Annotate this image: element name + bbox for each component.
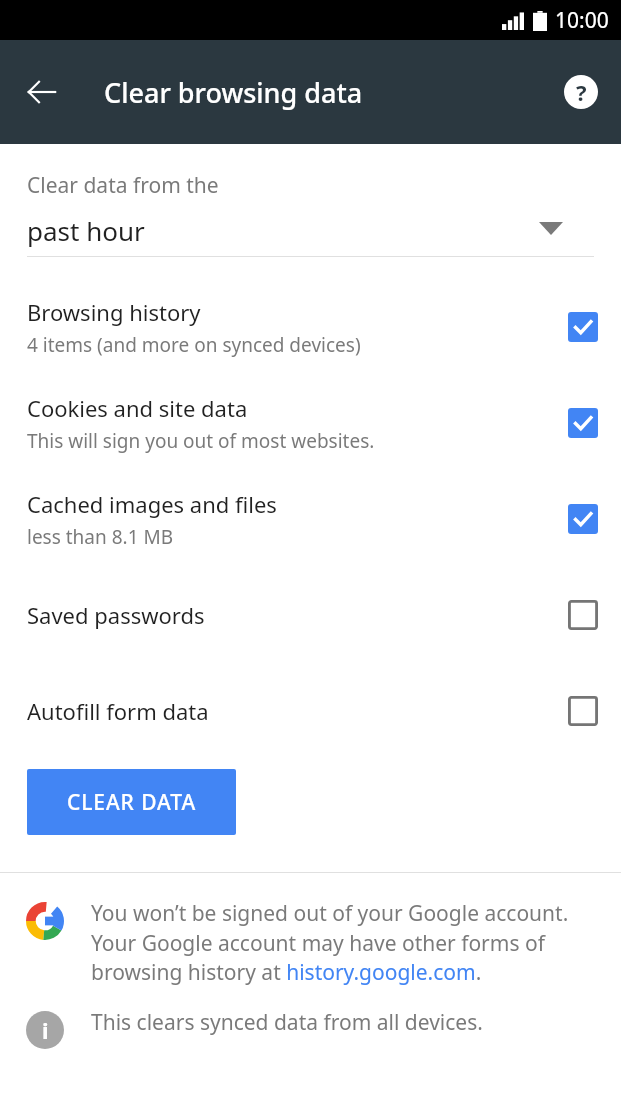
staticText: less than 8.1 MB bbox=[27, 524, 174, 550]
staticText: Clear data from the bbox=[27, 171, 219, 200]
button[interactable]: Checked bbox=[559, 495, 607, 543]
staticText: Autofill form data bbox=[27, 696, 209, 726]
button[interactable]: Checked bbox=[559, 303, 607, 351]
staticText: 10:00 bbox=[555, 6, 609, 35]
staticText: Cached images and files bbox=[27, 489, 277, 519]
staticText: Saved passwords bbox=[27, 600, 205, 630]
button[interactable]: CLEAR DATA bbox=[27, 769, 236, 835]
button[interactable]: Autofill form data bbox=[0, 663, 621, 759]
staticText: CLEAR DATA bbox=[67, 788, 197, 817]
button[interactable]: Help bbox=[555, 66, 607, 118]
staticText: ? bbox=[576, 77, 587, 107]
button[interactable]: Browsing history bbox=[0, 279, 621, 375]
staticText: Browsing history bbox=[27, 297, 201, 327]
button[interactable]: Cookies and site data bbox=[0, 375, 621, 471]
staticText: This will sign you out of most websites. bbox=[27, 428, 375, 454]
button[interactable]: Checked bbox=[559, 399, 607, 447]
staticText: past hour bbox=[27, 213, 145, 248]
button[interactable]: Back bbox=[14, 64, 70, 120]
button[interactable]: Cached images and files bbox=[0, 471, 621, 567]
staticText: 4 items (and more on synced devices) bbox=[27, 332, 361, 358]
staticText: Clear browsing data bbox=[104, 74, 363, 111]
staticText: Cookies and site data bbox=[27, 393, 248, 423]
button[interactable]: past hour bbox=[0, 200, 621, 256]
staticText: i bbox=[42, 1015, 49, 1045]
staticText: You won’t be signed out of your Google a… bbox=[91, 899, 601, 986]
button[interactable]: Unchecked bbox=[559, 591, 607, 639]
button[interactable]: Saved passwords bbox=[0, 567, 621, 663]
staticText: This clears synced data from all devices… bbox=[91, 1008, 483, 1037]
button[interactable]: Unchecked bbox=[559, 687, 607, 735]
